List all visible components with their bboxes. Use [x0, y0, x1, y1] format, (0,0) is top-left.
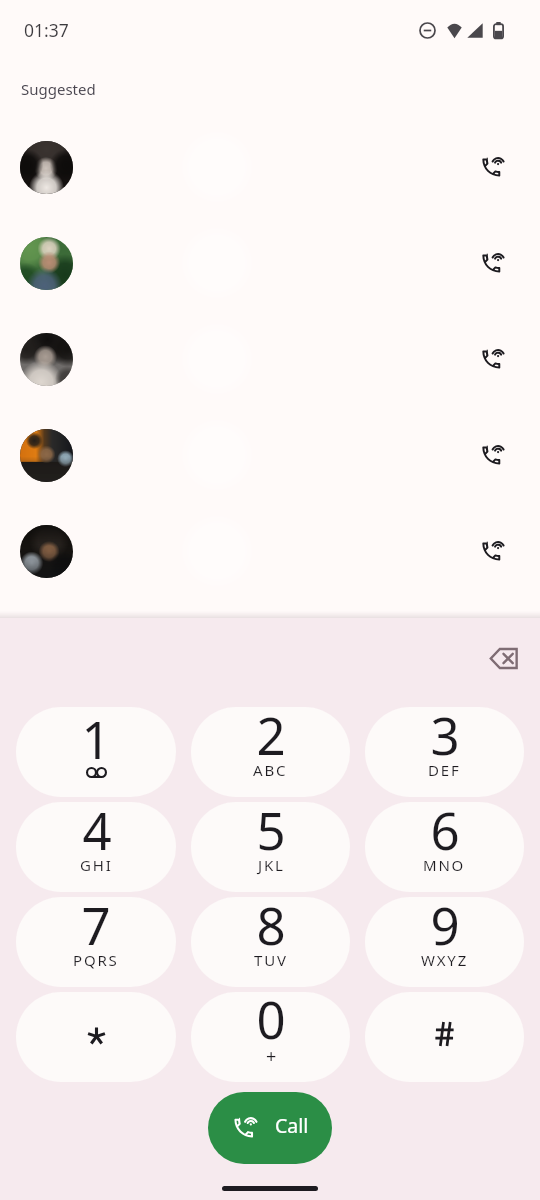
button[interactable]: Wi-Fi call — [0, 215, 540, 311]
button[interactable]: Wi-Fi call — [465, 139, 521, 195]
staticText: 2 — [256, 707, 286, 769]
staticText: 9 — [430, 897, 460, 959]
button[interactable]: 3 — [365, 707, 524, 797]
button[interactable]: Wi-Fi call — [0, 407, 540, 503]
staticText: MNO — [423, 855, 466, 875]
button[interactable]: 5 — [191, 802, 350, 892]
staticText: GHI — [80, 855, 113, 875]
staticText: 4 — [82, 802, 112, 864]
staticText: 01:37 — [24, 18, 69, 42]
staticText: 7 — [81, 897, 111, 959]
staticText: ABC — [253, 760, 288, 780]
staticText: JKL — [258, 855, 285, 875]
staticText: 0 — [256, 992, 286, 1053]
button[interactable]: 9 — [365, 897, 524, 987]
button[interactable]: Wi-Fi call — [465, 235, 521, 291]
button[interactable]: 0 — [191, 992, 350, 1082]
button[interactable]: 8 — [191, 897, 350, 987]
button[interactable]: Call — [208, 1092, 332, 1164]
staticText: + — [266, 1044, 277, 1065]
staticText: Suggested — [21, 79, 96, 99]
button[interactable]: Wi-Fi call — [0, 503, 540, 599]
staticText: TUV — [254, 950, 288, 970]
staticText: WXYZ — [421, 950, 469, 970]
button[interactable]: Wi-Fi call — [465, 331, 521, 387]
button[interactable]: 4 — [16, 802, 176, 892]
button[interactable] — [16, 992, 176, 1082]
button[interactable]: 7 — [16, 897, 176, 987]
button[interactable]: 1 — [16, 707, 176, 797]
staticText: 6 — [430, 802, 460, 864]
button[interactable]: Wi-Fi call — [0, 119, 540, 215]
button[interactable]: 2 — [191, 707, 350, 797]
button[interactable]: Wi-Fi call — [465, 523, 521, 579]
staticText: 1 — [81, 707, 111, 773]
staticText: 5 — [256, 802, 286, 864]
button[interactable]: Wi-Fi call — [0, 311, 540, 407]
staticText: 3 — [430, 707, 460, 769]
button[interactable]: 6 — [365, 802, 524, 892]
button[interactable] — [365, 992, 524, 1082]
staticText: PQRS — [73, 950, 119, 970]
button[interactable]: Wi-Fi call — [465, 427, 521, 483]
staticText: DEF — [428, 760, 461, 780]
button[interactable]: Backspace — [476, 630, 532, 686]
staticText: 8 — [256, 897, 286, 959]
staticText: Call — [275, 1112, 309, 1139]
